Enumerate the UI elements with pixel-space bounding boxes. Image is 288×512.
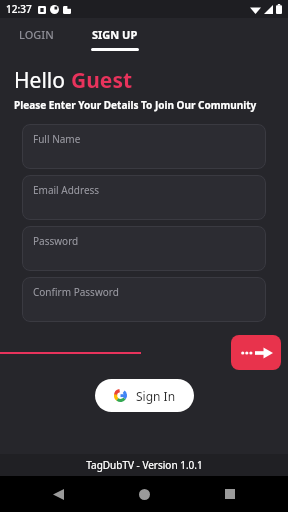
button[interactable]: Email Address (22, 175, 266, 220)
button[interactable]: Home (116, 476, 172, 512)
button[interactable]: Back (30, 476, 86, 512)
staticText: Password (33, 234, 79, 248)
staticText: Confirm Password (33, 285, 119, 299)
staticText: 12:37 (6, 2, 32, 16)
button[interactable]: Recent apps (202, 476, 258, 512)
button[interactable]: Sign In (95, 379, 194, 412)
staticText: Email Address (33, 183, 100, 197)
button[interactable]: Next (231, 335, 281, 370)
staticText: Hello (14, 66, 71, 95)
staticText: Full Name (33, 132, 81, 146)
button[interactable]: Password (22, 226, 266, 271)
button[interactable]: Confirm Password (22, 277, 266, 322)
staticText: LOGIN (19, 27, 54, 42)
staticText: Guest (71, 66, 133, 95)
button[interactable]: Full Name (22, 124, 266, 169)
staticText: TagDubTV - Version 1.0.1 (86, 458, 203, 472)
button[interactable]: LOGIN (0, 18, 72, 52)
staticText: Please Enter Your Details To Join Our Co… (14, 98, 257, 112)
staticText: SIGN UP (92, 27, 138, 42)
button[interactable]: SIGN UP (72, 18, 158, 52)
staticText: Sign In (136, 388, 176, 404)
